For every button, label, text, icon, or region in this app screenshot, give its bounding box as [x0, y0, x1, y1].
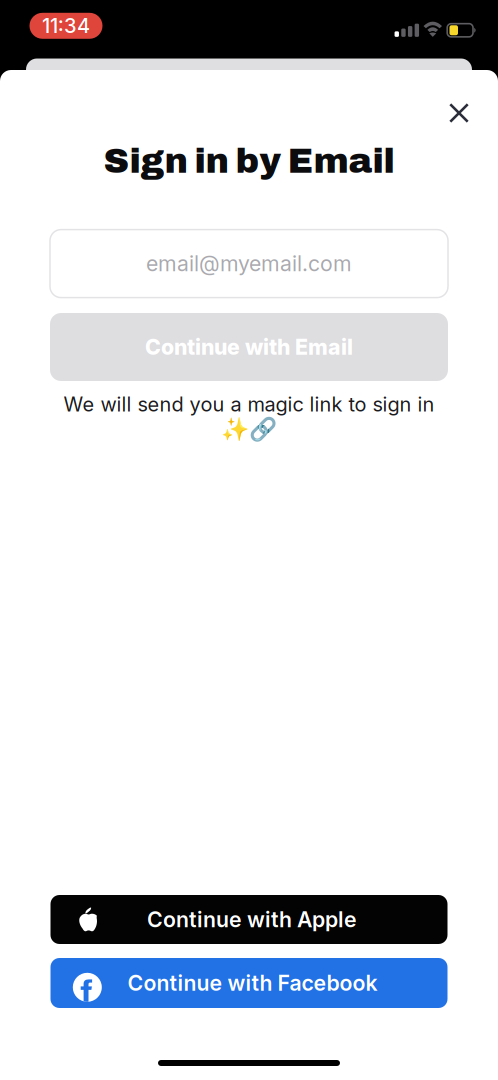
staticText: 11:34: [42, 14, 90, 38]
staticText: Continue with Email: [145, 334, 353, 360]
button[interactable]: Continue with Email: [50, 313, 448, 381]
button[interactable]: Continue with Apple: [50, 895, 447, 944]
button[interactable]: Continue with Facebook: [50, 958, 447, 1008]
button[interactable]: Close: [436, 90, 482, 136]
staticText: ✨🔗: [221, 416, 277, 443]
staticText: Sign in by Email: [103, 142, 394, 180]
staticText: Continue with Facebook: [127, 970, 377, 996]
staticText: Continue with Apple: [147, 907, 357, 932]
staticText: We will send you a magic link to sign in: [63, 392, 434, 416]
staticText: email@myemail.com: [146, 251, 352, 276]
